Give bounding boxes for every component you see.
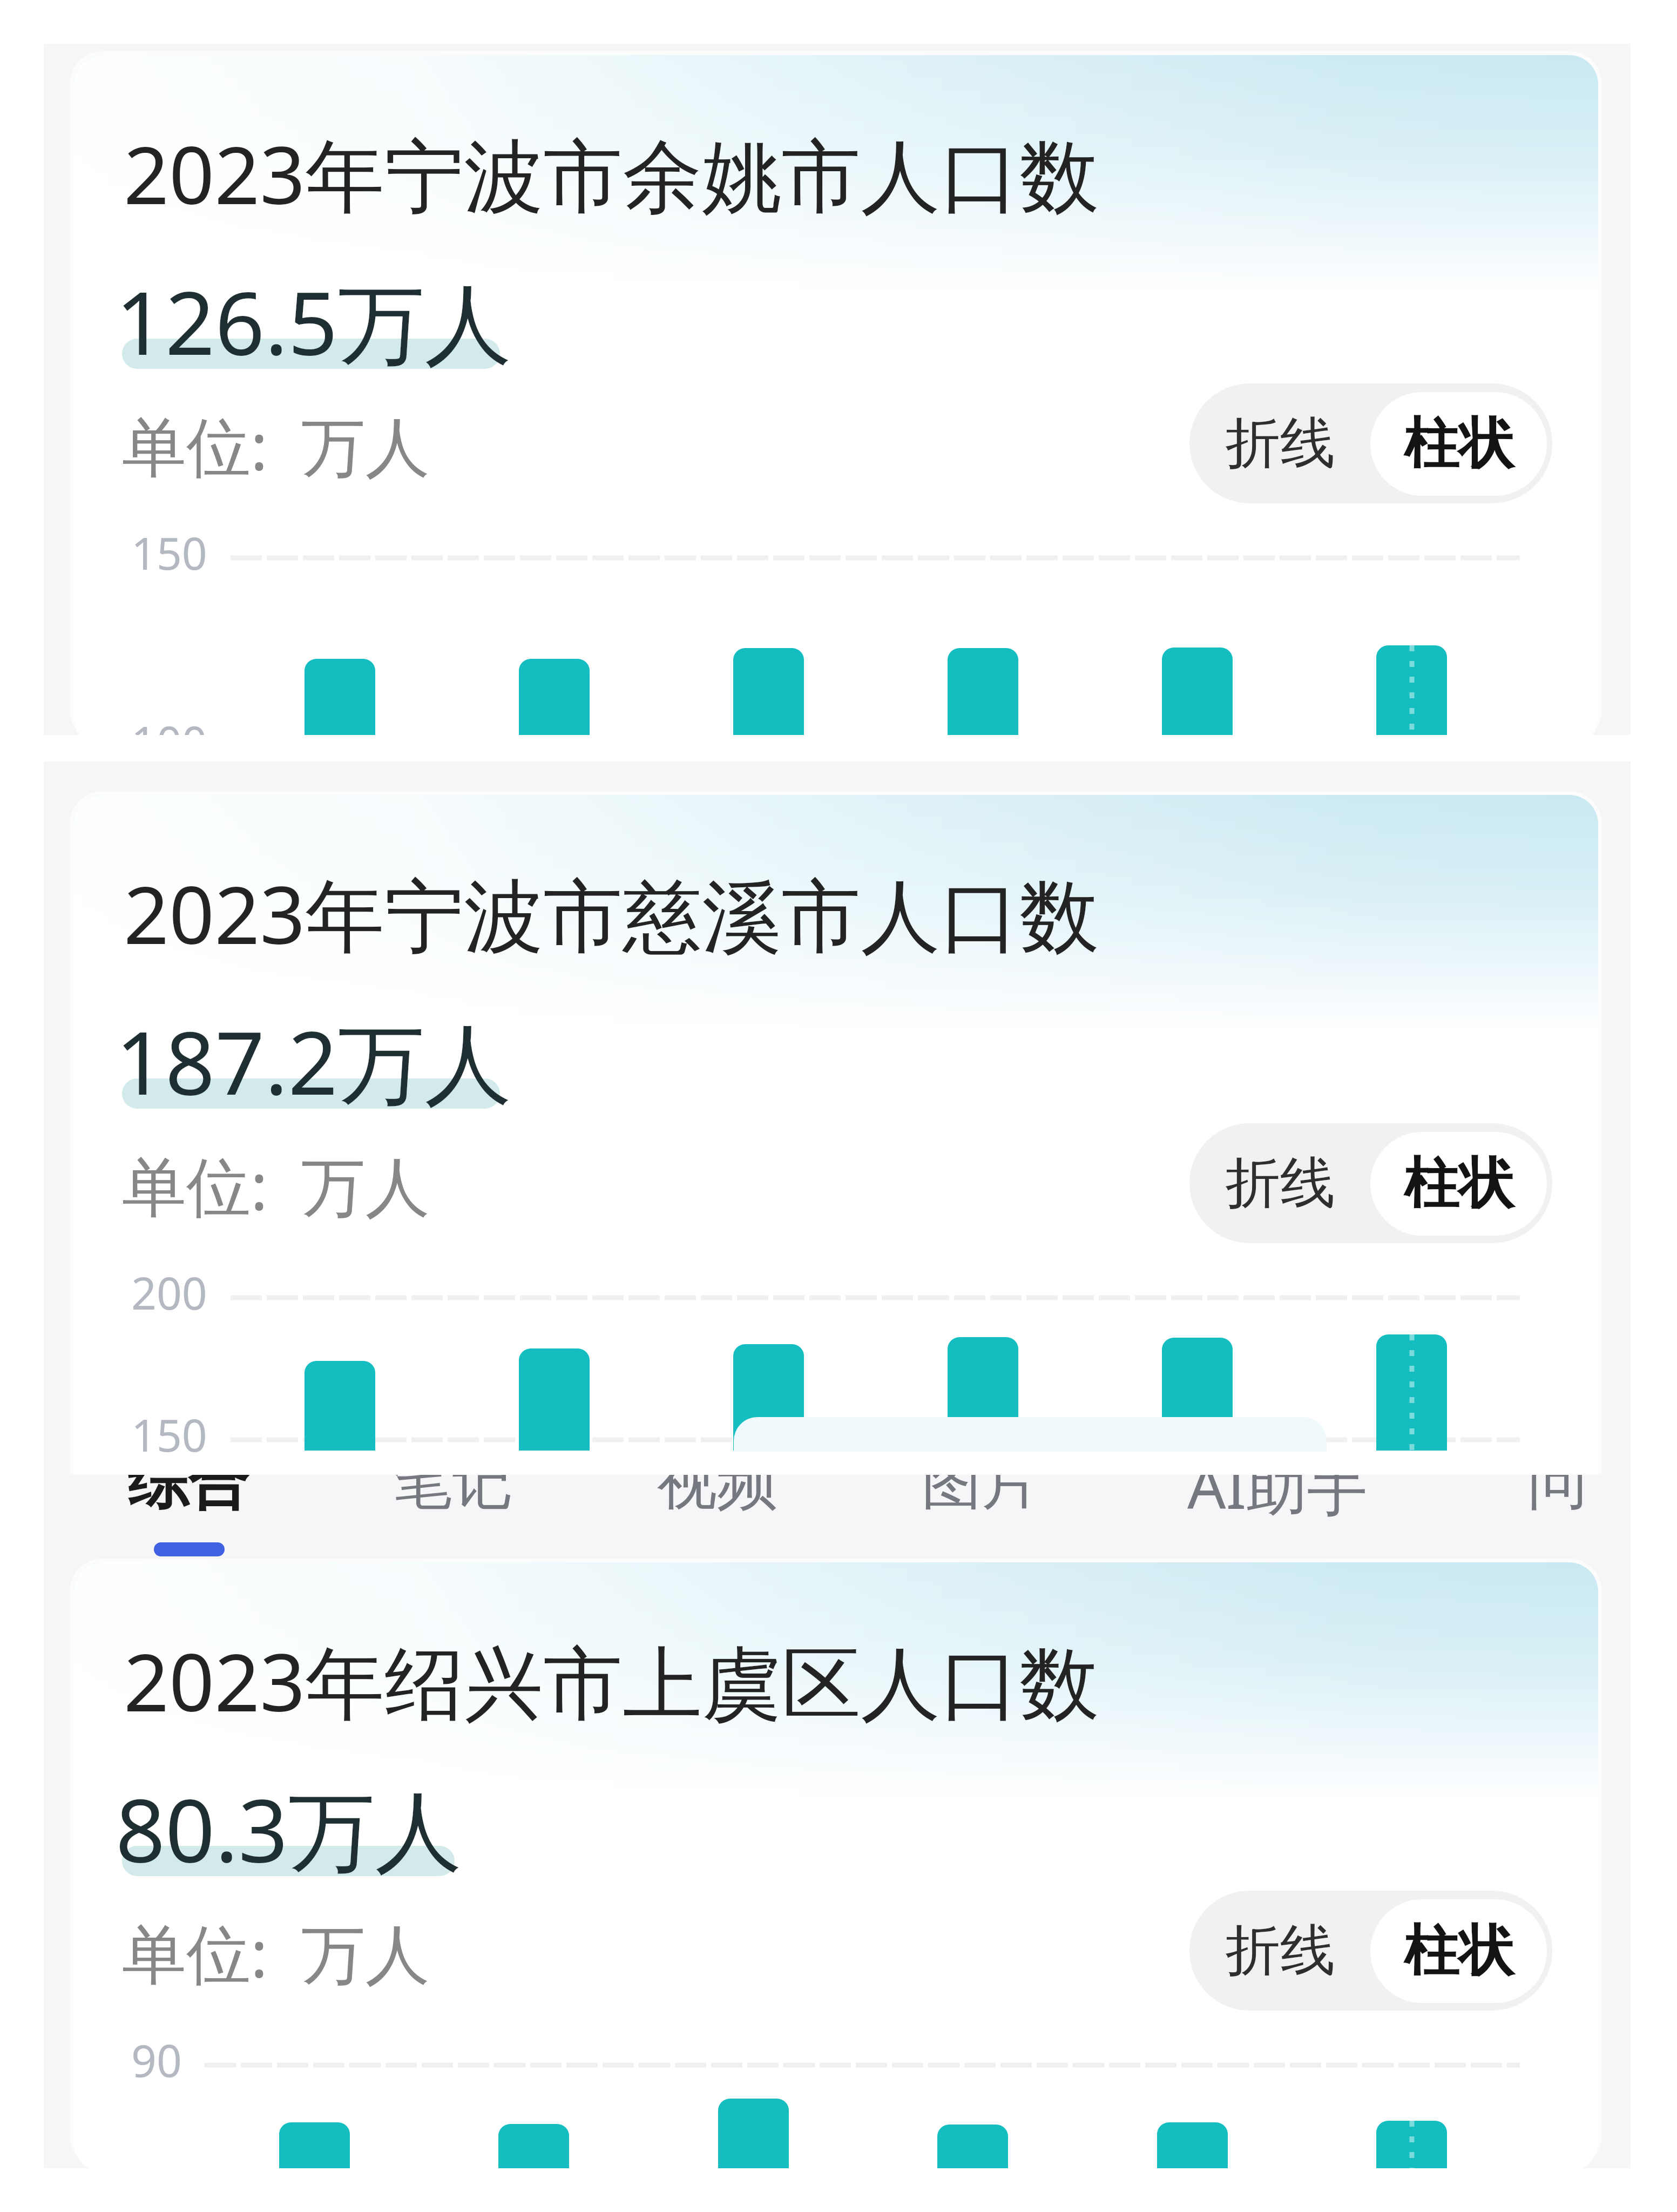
button[interactable]: 折线: [1189, 1123, 1370, 1243]
staticText: 折线: [1225, 1149, 1335, 1218]
staticText: 80.3万人: [116, 1769, 462, 1888]
button[interactable]: 柱状: [1370, 392, 1547, 496]
staticText: 2023年宁波市余姚市人口数: [124, 119, 1099, 228]
staticText: 视频: [657, 1475, 777, 1520]
staticText: 150: [131, 1404, 207, 1465]
staticText: 柱状: [1404, 409, 1514, 478]
button[interactable]: 柱状: [1370, 1132, 1547, 1236]
staticText: 187.2万人: [116, 1002, 512, 1121]
staticText: 综合: [127, 1475, 248, 1520]
other: Selected tab indicator: [154, 1542, 225, 1556]
button[interactable]: [73, 1562, 1598, 2168]
button[interactable]: 图片: [849, 1475, 1114, 1559]
staticText: 折线: [1225, 1916, 1335, 1985]
button[interactable]: 问: [1527, 1475, 1631, 1559]
staticText: 150: [131, 522, 207, 583]
staticText: 2023年绍兴市上虞区人口数: [124, 1627, 1099, 1735]
staticText: 图片: [921, 1475, 1042, 1520]
button[interactable]: [73, 55, 1598, 735]
staticText: 折线: [1225, 409, 1335, 478]
staticText: 柱状: [1404, 1917, 1514, 1986]
staticText: AI助手: [1187, 1475, 1368, 1527]
staticText: 问: [1527, 1475, 1588, 1520]
staticText: 100: [131, 711, 207, 735]
button[interactable]: 笔记: [320, 1475, 585, 1559]
staticText: 单位: 万人: [122, 401, 430, 489]
button[interactable]: 柱状: [1370, 1899, 1547, 2003]
button[interactable]: AI助手: [1145, 1475, 1410, 1559]
staticText: 200: [131, 1262, 207, 1323]
staticText: 柱状: [1404, 1149, 1514, 1218]
staticText: 笔记: [392, 1475, 513, 1520]
button[interactable]: 折线: [1189, 383, 1370, 503]
staticText: 2023年宁波市慈溪市人口数: [124, 859, 1099, 968]
staticText: 90: [131, 2029, 182, 2090]
button[interactable]: [73, 795, 1598, 1475]
staticText: 单位: 万人: [122, 1141, 430, 1229]
button[interactable]: 折线: [1189, 1891, 1370, 2011]
staticText: 单位: 万人: [122, 1908, 430, 1997]
button[interactable]: 视频: [585, 1475, 849, 1559]
button[interactable]: 综合: [56, 1475, 320, 1559]
staticText: 126.5万人: [116, 262, 512, 381]
